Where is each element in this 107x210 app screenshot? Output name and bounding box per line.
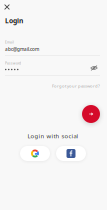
staticText: Password: [5, 61, 21, 65]
staticText: Login: [5, 16, 23, 25]
button[interactable]: Forgot your password?: [52, 83, 100, 89]
button[interactable]: Close: [1, 1, 12, 12]
button[interactable]: Continue: [82, 105, 100, 123]
button[interactable]: Show password: [89, 64, 99, 72]
staticText: Forgot your password?: [52, 83, 100, 89]
staticText: abc@gmail.com: [5, 46, 39, 52]
staticText: Login with social: [27, 132, 78, 140]
button[interactable]: Sign in with Google: [20, 146, 50, 161]
button[interactable]: Sign in with Facebook: [56, 146, 86, 161]
staticText: Email: [5, 40, 14, 44]
